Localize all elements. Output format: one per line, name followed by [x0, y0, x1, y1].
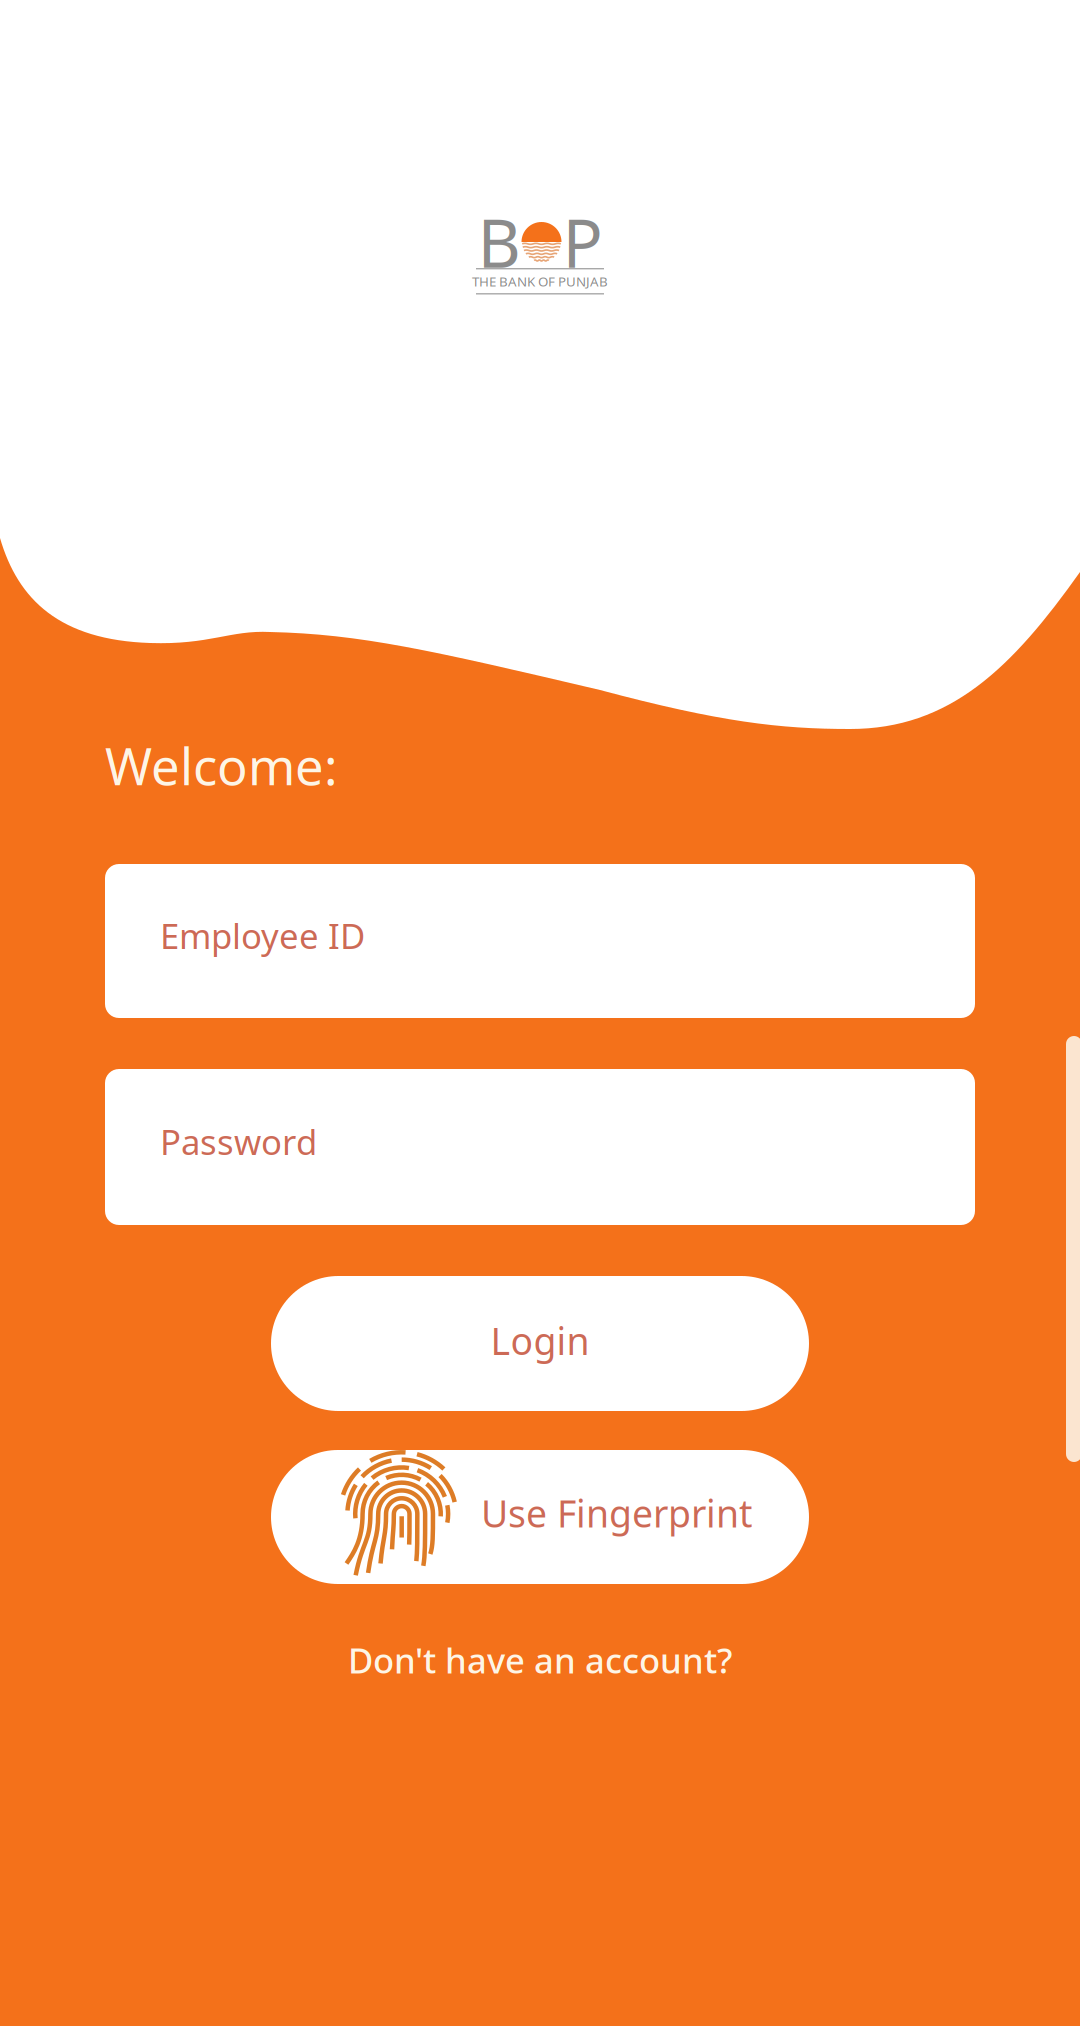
staticText: Password [160, 1118, 317, 1164]
staticText: Login [490, 1316, 589, 1365]
staticText: Don't have an account? [348, 1637, 732, 1683]
staticText: THE BANK OF PUNJAB [472, 272, 608, 290]
button[interactable]: Use Fingerprint [271, 1450, 809, 1584]
staticText: B [477, 198, 520, 286]
staticText: Welcome: [105, 732, 338, 799]
button[interactable]: Password [105, 1069, 975, 1225]
staticText: Use Fingerprint [481, 1488, 752, 1538]
staticText: Employee ID [160, 912, 365, 958]
button[interactable]: Employee ID [105, 864, 975, 1018]
staticText: P [562, 198, 602, 286]
button[interactable]: Don't have an account? [348, 1637, 732, 1683]
button[interactable]: Login [271, 1276, 809, 1411]
